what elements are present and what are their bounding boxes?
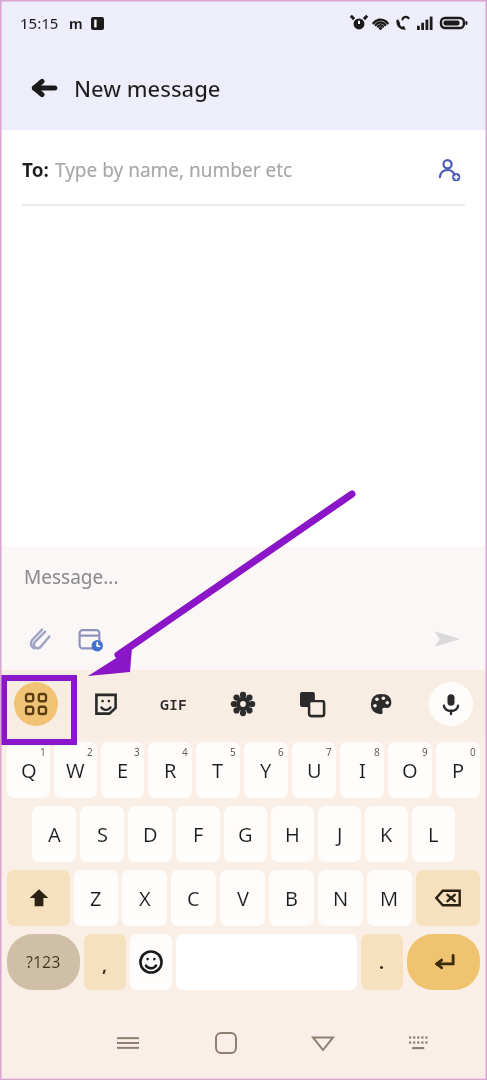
staticText: N: [333, 885, 349, 912]
staticText: m: [69, 14, 83, 33]
staticText: Z: [90, 885, 102, 912]
button[interactable]: Attach file: [20, 619, 60, 659]
button[interactable]: Schedule message: [70, 619, 110, 659]
staticText: L: [428, 821, 439, 848]
button[interactable]: Q: [7, 742, 50, 798]
staticText: New message: [74, 73, 221, 103]
staticText: 6: [278, 745, 284, 759]
button[interactable]: A: [32, 806, 76, 862]
staticText: To:: [22, 157, 49, 183]
button[interactable]: K: [365, 806, 408, 862]
staticText: .: [379, 950, 385, 975]
staticText: 1: [40, 745, 46, 759]
button[interactable]: Emoji: [130, 934, 172, 990]
staticText: I: [359, 757, 366, 784]
staticText: 2: [87, 745, 93, 759]
button[interactable]: Stickers: [72, 670, 140, 738]
staticText: A: [48, 821, 61, 848]
button[interactable]: W: [54, 742, 97, 798]
staticText: F: [193, 821, 204, 848]
button[interactable]: Back: [274, 1008, 371, 1078]
button[interactable]: Backspace: [416, 870, 480, 926]
staticText: Message...: [24, 564, 119, 590]
button[interactable]: H: [271, 806, 314, 862]
staticText: O: [402, 757, 418, 784]
button[interactable]: J: [318, 806, 361, 862]
staticText: P: [452, 757, 465, 784]
staticText: B: [285, 885, 298, 912]
staticText: E: [117, 757, 129, 784]
button[interactable]: P: [436, 742, 480, 798]
button[interactable]: D: [128, 806, 172, 862]
button[interactable]: Apps: [0, 670, 72, 738]
button[interactable]: GIF: [140, 670, 208, 738]
staticText: M: [380, 885, 399, 912]
staticText: T: [212, 757, 224, 784]
staticText: H: [285, 821, 300, 848]
button[interactable]: Home: [177, 1008, 274, 1078]
button[interactable]: .: [361, 934, 403, 990]
button[interactable]: G: [224, 806, 267, 862]
button[interactable]: Recent apps: [79, 1008, 177, 1078]
button[interactable]: Settings: [208, 670, 277, 738]
button[interactable]: X: [122, 870, 167, 926]
button[interactable]: O: [388, 742, 432, 798]
staticText: V: [237, 885, 249, 912]
staticText: 5: [230, 745, 236, 759]
staticText: ?123: [26, 951, 61, 973]
button[interactable]: Hide keyboard: [371, 1008, 468, 1078]
button[interactable]: Y: [244, 742, 288, 798]
staticText: D: [143, 821, 158, 848]
staticText: 7: [326, 745, 332, 759]
staticText: K: [380, 821, 393, 848]
button[interactable]: B: [269, 870, 314, 926]
button[interactable]: Type by name, number etc: [55, 157, 431, 183]
button[interactable]: N: [318, 870, 363, 926]
button[interactable]: R: [148, 742, 192, 798]
button[interactable]: Shift: [7, 870, 70, 926]
button[interactable]: I: [340, 742, 384, 798]
button[interactable]: Enter: [407, 934, 480, 990]
staticText: ,: [102, 953, 108, 978]
button[interactable]: Add contact: [431, 152, 467, 188]
staticText: GIF: [160, 694, 188, 714]
staticText: G: [238, 821, 253, 848]
staticText: 8: [374, 745, 380, 759]
staticText: Y: [260, 757, 272, 784]
staticText: Q: [21, 757, 37, 784]
staticText: 3: [134, 745, 140, 759]
staticText: Type by name, number etc: [55, 157, 293, 183]
staticText: 9: [422, 745, 428, 759]
button[interactable]: Translate: [277, 670, 346, 738]
button[interactable]: Back: [24, 68, 64, 108]
button[interactable]: ,: [84, 934, 126, 990]
button[interactable]: L: [412, 806, 455, 862]
button[interactable]: E: [101, 742, 144, 798]
staticText: 4: [182, 745, 188, 759]
button[interactable]: V: [220, 870, 265, 926]
button[interactable]: U: [292, 742, 336, 798]
button[interactable]: Send: [425, 617, 469, 661]
staticText: X: [139, 885, 151, 912]
staticText: J: [337, 821, 343, 848]
staticText: C: [187, 885, 200, 912]
button[interactable]: C: [171, 870, 216, 926]
button[interactable]: F: [176, 806, 220, 862]
staticText: S: [97, 821, 108, 848]
staticText: U: [307, 757, 322, 784]
button[interactable]: ?123: [7, 934, 80, 990]
staticText: R: [164, 757, 177, 784]
button[interactable]: S: [80, 806, 124, 862]
button[interactable]: M: [367, 870, 412, 926]
button[interactable]: Z: [74, 870, 118, 926]
button[interactable]: Voice input: [415, 670, 487, 738]
staticText: 0: [470, 745, 476, 759]
staticText: 15:15: [20, 13, 59, 33]
button[interactable]: Themes: [346, 670, 415, 738]
button[interactable]: T: [196, 742, 240, 798]
staticText: W: [66, 757, 85, 784]
